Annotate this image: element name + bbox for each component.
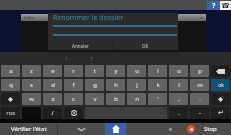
staticText: x (51, 95, 55, 103)
button[interactable]: b (106, 93, 125, 105)
staticText: s (30, 81, 33, 89)
button[interactable]: Shift (1, 93, 20, 105)
button[interactable]: h (106, 79, 125, 91)
staticText: ? (90, 55, 93, 63)
staticText: c (72, 95, 75, 103)
button[interactable]: u (127, 65, 146, 77)
button[interactable]: g (85, 79, 104, 91)
staticText: m (197, 81, 203, 89)
staticText: × (200, 14, 204, 21)
button[interactable]: j (127, 79, 146, 91)
button[interactable]: / (43, 107, 62, 119)
button[interactable]: r (64, 65, 83, 77)
button[interactable]: a (1, 65, 20, 77)
staticText: t (93, 67, 96, 75)
staticText: ' (157, 95, 159, 103)
staticText: g (93, 81, 97, 89)
button[interactable]: Ubuntu menu (187, 125, 195, 133)
staticText: ☎ (221, 2, 230, 10)
button[interactable]: x (43, 93, 62, 105)
staticText: Annuler (72, 43, 89, 49)
button[interactable]: w (22, 93, 41, 105)
button[interactable]: Shift (211, 93, 230, 105)
staticText: v (93, 95, 97, 103)
staticText: Stop (204, 125, 217, 133)
staticText: Vérifier l'état (11, 125, 47, 133)
button[interactable]: v (85, 93, 104, 105)
button[interactable]: z (22, 65, 41, 77)
staticText: n (135, 95, 139, 103)
staticText: folder (24, 15, 36, 20)
button[interactable]: f (64, 79, 83, 91)
staticText: / (51, 109, 54, 117)
staticText: ? (212, 1, 216, 10)
staticText: p (198, 67, 202, 75)
staticText: , (178, 95, 180, 103)
staticText: w (29, 95, 34, 103)
button[interactable]: - (190, 107, 209, 119)
staticText: ! (66, 55, 68, 63)
staticText: ↵ (218, 109, 224, 117)
staticText: r (72, 67, 75, 75)
button[interactable]: n (127, 93, 146, 105)
button[interactable]: s (22, 79, 41, 91)
button[interactable]: . (169, 107, 188, 119)
button[interactable]: k (148, 79, 167, 91)
staticText: . (199, 95, 201, 103)
button[interactable]: , (169, 93, 188, 105)
staticText: f (72, 81, 75, 89)
button[interactable]: l (169, 79, 188, 91)
button[interactable]: Close window (197, 14, 206, 21)
button[interactable]: q (1, 79, 20, 91)
staticText: i (157, 67, 159, 75)
staticText: l (178, 81, 180, 89)
button[interactable]: ?123 (1, 107, 20, 119)
button[interactable]: Help (207, 1, 220, 10)
button[interactable]: Annuler (48, 41, 112, 50)
button[interactable]: Phone (220, 1, 231, 10)
staticText: y (114, 67, 118, 75)
button[interactable]: OK (113, 41, 178, 50)
button[interactable]: i (148, 65, 167, 77)
button[interactable]: p (190, 65, 209, 77)
staticText: a (9, 67, 13, 75)
button[interactable]: d (43, 79, 62, 91)
button[interactable]: y (106, 65, 125, 77)
button[interactable]: c (64, 93, 83, 105)
button[interactable]: Stop (204, 125, 217, 133)
button[interactable]: Enter (211, 107, 230, 119)
button[interactable]: Change language (64, 107, 83, 119)
button[interactable]: Backspace (211, 65, 230, 77)
staticText: h (114, 81, 118, 89)
staticText: b (114, 95, 118, 103)
button[interactable]: ' (148, 93, 167, 105)
staticText: q (9, 81, 13, 89)
button[interactable]: Home (105, 123, 126, 135)
staticText: OK (142, 43, 149, 49)
button[interactable]: m (190, 79, 209, 91)
staticText: Renommer le dossier (53, 13, 124, 23)
button[interactable]: t (85, 65, 104, 77)
staticText: j (136, 81, 138, 89)
button[interactable]: ok (211, 79, 230, 91)
button[interactable]: Vérifier l'état (0, 123, 57, 135)
staticText: d (51, 81, 55, 89)
staticText: . (178, 109, 180, 117)
staticText: o (177, 67, 181, 75)
staticText: e (51, 67, 55, 75)
staticText: - (199, 109, 201, 117)
staticText: k (156, 81, 160, 89)
staticText: ok (218, 82, 224, 89)
button[interactable]: Back (58, 123, 105, 135)
staticText: u (135, 67, 139, 75)
staticText: ?123 (6, 111, 15, 116)
button[interactable]: e (43, 65, 62, 77)
button[interactable]: . (190, 93, 209, 105)
button[interactable]: o (169, 65, 188, 77)
staticText: z (30, 67, 33, 75)
